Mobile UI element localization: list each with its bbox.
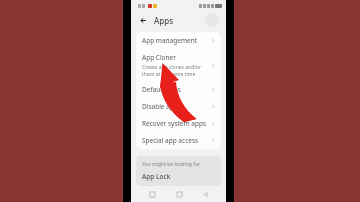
button[interactable]: Recents	[146, 188, 158, 200]
button[interactable]: Home	[173, 188, 185, 200]
button[interactable]: Back	[199, 188, 211, 200]
staticText: Recover system apps	[142, 119, 207, 128]
staticText: App Lock	[142, 172, 171, 181]
button[interactable]: App management	[136, 32, 221, 49]
button[interactable]: Default apps	[136, 81, 221, 98]
button[interactable]: Recover system apps	[136, 115, 221, 132]
staticText: Disable apps	[142, 102, 181, 111]
staticText: App Cloner	[142, 53, 176, 62]
button[interactable]: Disable apps	[136, 98, 221, 115]
staticText: Create app clones and/or them at the sam…	[142, 64, 208, 77]
button[interactable]: App Cloner	[136, 49, 221, 81]
button[interactable]: You might be looking for	[136, 156, 221, 186]
staticText: You might be looking for	[142, 161, 201, 168]
staticText: Apps	[154, 15, 174, 26]
staticText: Default apps	[142, 85, 181, 94]
staticText: Special app access	[142, 136, 199, 145]
button[interactable]: Back	[137, 14, 150, 27]
button[interactable]: Special app access	[136, 132, 221, 149]
staticText: App management	[142, 36, 197, 45]
